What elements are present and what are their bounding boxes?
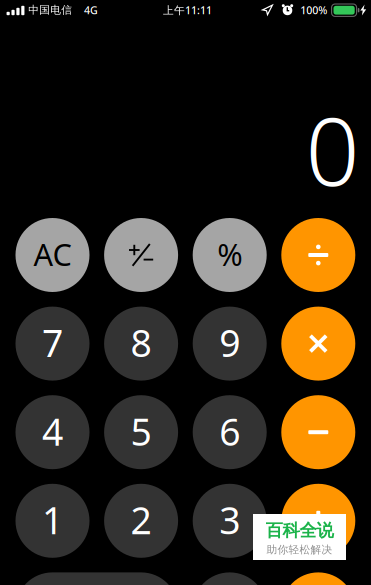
staticText: 100% [300, 3, 327, 17]
button[interactable]: 6 [193, 395, 267, 469]
button[interactable]: Percent [193, 218, 267, 292]
staticText: 8 [131, 318, 152, 367]
staticText: 百科全说 [265, 520, 333, 541]
button[interactable]: All clear [15, 218, 89, 292]
button[interactable]: Subtract [281, 395, 355, 469]
staticText: AC [33, 234, 71, 274]
staticText: 4G [84, 3, 98, 17]
button[interactable]: Decimal point [193, 572, 267, 585]
staticText: 0 [305, 86, 359, 212]
staticText: 3 [219, 495, 240, 545]
staticText: 1 [42, 495, 63, 545]
button[interactable]: Add [281, 484, 355, 558]
staticText: 4 [42, 406, 63, 456]
button[interactable]: 2 [104, 484, 178, 558]
button[interactable]: 9 [193, 307, 267, 381]
staticText: 2 [131, 495, 152, 545]
button[interactable]: Multiply [281, 307, 355, 381]
button[interactable]: 1 [15, 484, 89, 558]
button[interactable]: Equals [281, 572, 355, 585]
button[interactable]: Plus minus [104, 218, 178, 292]
staticText: 5 [131, 406, 152, 456]
button[interactable]: 5 [104, 395, 178, 469]
staticText: 7 [42, 318, 63, 367]
staticText: 上午11:11 [163, 3, 212, 17]
staticText: 9 [219, 318, 240, 367]
button[interactable]: Divide [281, 218, 355, 292]
staticText: 助你轻松解决 [266, 543, 332, 556]
button[interactable]: 4 [15, 395, 89, 469]
staticText: 中国电信 [28, 3, 72, 16]
button[interactable]: 3 [193, 484, 267, 558]
button[interactable]: 0 [15, 572, 178, 585]
button[interactable]: 8 [104, 307, 178, 381]
staticText: % [217, 234, 242, 274]
staticText: 6 [219, 406, 240, 456]
button[interactable]: 7 [15, 307, 89, 381]
